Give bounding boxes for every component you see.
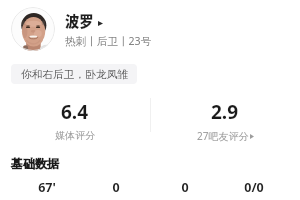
- button[interactable]: 2.9: [150, 97, 300, 144]
- staticText: 2.9: [211, 99, 239, 125]
- staticText: 你和右后卫，卧龙凤雏: [21, 68, 128, 81]
- staticText: 基础数据: [11, 156, 59, 171]
- staticText: 热刺丨后卫丨23号: [65, 34, 152, 48]
- button[interactable]: 波罗: [11, 7, 288, 51]
- staticText: 0: [181, 179, 189, 196]
- staticText: 媒体评分: [55, 129, 95, 142]
- button[interactable]: 你和右后卫，卧龙凤雏: [11, 64, 137, 84]
- staticText: 6.4: [61, 99, 89, 125]
- staticText: 27吧友评分: [197, 129, 249, 143]
- staticText: 67': [38, 179, 56, 196]
- staticText: 0: [112, 179, 120, 196]
- button[interactable]: 6.4: [0, 97, 150, 144]
- staticText: 0/0: [244, 179, 264, 196]
- staticText: 波罗: [65, 10, 94, 31]
